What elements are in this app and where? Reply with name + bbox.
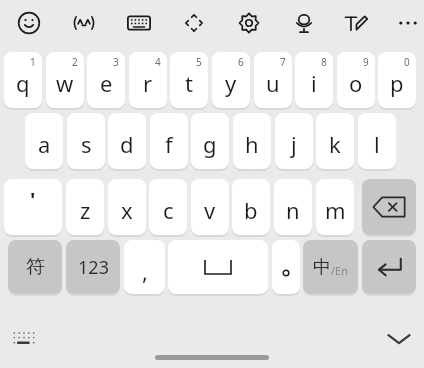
staticText: q [16,68,30,98]
staticText: w [56,68,74,98]
staticText: l [374,129,380,159]
staticText: 1 [30,55,36,69]
button[interactable]: w [46,52,84,108]
staticText: g [203,129,217,159]
button[interactable]: f [150,113,188,169]
button[interactable]: Period [272,240,300,294]
button[interactable]: Settings [233,7,265,39]
staticText: ' [30,186,36,213]
staticText: x [121,195,133,225]
staticText: 0 [404,55,410,69]
button[interactable]: d [108,113,146,169]
staticText: /En [331,263,349,278]
button[interactable]: k [316,113,354,169]
button[interactable]: l [358,113,396,169]
button[interactable]: Voice input [288,7,320,39]
button[interactable]: i [295,52,333,108]
button[interactable]: x [108,179,146,235]
button[interactable]: h [233,113,271,169]
button[interactable]: Switch language [303,240,358,294]
button[interactable]: Switch input method [6,320,42,356]
staticText: t [185,68,193,98]
button[interactable]: o [337,52,375,108]
button[interactable]: Hide keyboard [380,320,418,358]
button[interactable]: Emoji [13,7,45,39]
button[interactable]: z [66,179,104,235]
button[interactable]: c [149,179,187,235]
staticText: n [286,195,300,225]
staticText: e [100,68,113,98]
button[interactable]: Move keyboard [178,7,210,39]
staticText: 8 [321,55,327,69]
button[interactable]: p [378,52,416,108]
button[interactable]: s [67,113,105,169]
button[interactable]: y [212,52,250,108]
staticText: y [225,68,237,98]
button[interactable]: r [129,52,167,108]
staticText: 3 [113,55,119,69]
staticText: 4 [155,55,161,69]
staticText: b [244,195,258,225]
button[interactable]: Enter [362,240,416,294]
staticText: d [120,129,134,159]
button[interactable]: q [4,52,42,108]
staticText: c [163,195,174,225]
staticText: u [266,68,280,98]
button[interactable]: v [191,179,229,235]
button[interactable]: More options [392,7,424,39]
staticText: 7 [280,55,286,69]
staticText: a [38,129,51,159]
button[interactable]: n [274,179,312,235]
staticText: 123 [78,255,109,280]
staticText: z [80,195,91,225]
button[interactable]: t [170,52,208,108]
button[interactable]: u [254,52,292,108]
button[interactable]: Symbols [8,240,62,294]
staticText: k [329,129,341,159]
staticText: 9 [363,55,369,69]
button[interactable]: ' [4,179,62,235]
staticText: f [165,129,173,159]
button[interactable]: Keyboard layout [123,7,155,39]
staticText: 2 [72,55,78,69]
staticText: 6 [238,55,244,69]
staticText: s [81,129,92,159]
staticText: p [390,68,404,98]
button[interactable]: Comma [124,240,165,294]
staticText: v [204,195,216,225]
staticText: i [311,68,317,98]
staticText: 符 [26,255,45,279]
button[interactable]: Handwriting [340,7,372,39]
staticText: o [349,68,363,98]
button[interactable]: b [232,179,270,235]
button[interactable]: Space [168,240,268,294]
button[interactable]: j [275,113,313,169]
button[interactable]: Kaomoji [68,7,100,39]
staticText: r [143,68,153,98]
staticText: 5 [196,55,202,69]
staticText: h [245,129,259,159]
staticText: 中 [313,256,331,279]
staticText: , [142,256,148,286]
button[interactable]: m [316,179,354,235]
button[interactable]: e [87,52,125,108]
staticText: j [291,129,297,159]
button[interactable]: Numbers [66,240,120,294]
button[interactable]: g [191,113,229,169]
staticText: m [325,195,346,225]
button[interactable]: a [25,113,63,169]
button[interactable]: Backspace [362,179,416,235]
